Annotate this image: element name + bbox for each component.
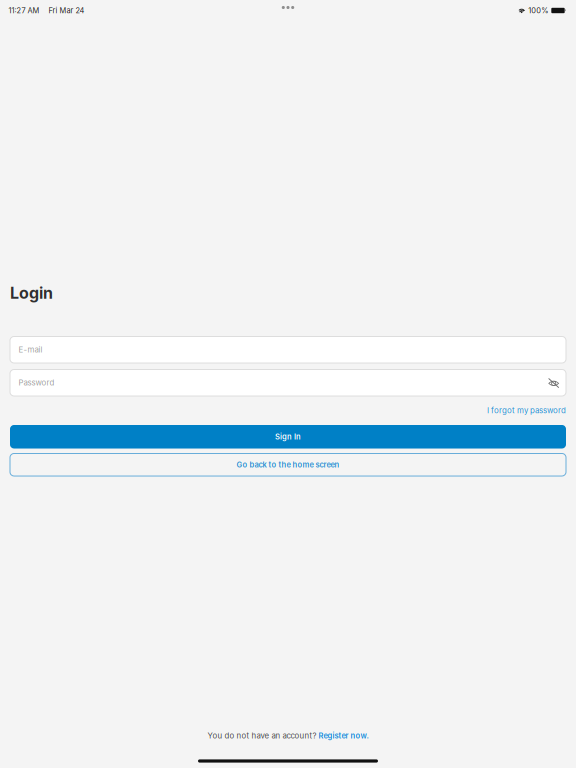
- staticText: Login: [10, 283, 53, 303]
- button[interactable]: Go back to the home screen: [10, 453, 566, 476]
- button[interactable]: I forgot my password: [10, 401, 566, 420]
- staticText: You do not have an account?: [207, 731, 318, 740]
- staticText: Fri Mar 24: [48, 6, 84, 15]
- staticText: 100%: [528, 6, 548, 15]
- button[interactable]: Sign In: [10, 425, 566, 448]
- button[interactable]: Register now.: [318, 731, 368, 740]
- staticText: Password: [19, 378, 55, 387]
- staticText: 11:27 AM: [8, 6, 39, 15]
- staticText: Register now.: [318, 731, 368, 740]
- staticText: E-mail: [19, 345, 43, 354]
- staticText: Go back to the home screen: [236, 460, 339, 469]
- staticText: I forgot my password: [487, 406, 566, 415]
- staticText: Sign In: [275, 432, 301, 441]
